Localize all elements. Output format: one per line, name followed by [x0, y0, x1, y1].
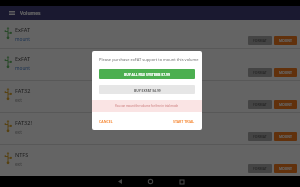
staticText: mount — [15, 65, 31, 72]
staticText: MOUNT — [279, 38, 292, 43]
staticText: mount — [15, 36, 31, 43]
staticText: FORMAT — [253, 134, 267, 139]
staticText: FORMAT — [253, 166, 267, 171]
button[interactable]: CANCEL — [99, 119, 113, 124]
staticText: BUY ALL FILE SYSTEMS $7.99 — [124, 72, 170, 76]
staticText: ext — [15, 97, 22, 104]
staticText: FAT32! — [15, 119, 32, 126]
staticText: ext — [15, 129, 22, 136]
button[interactable]: ExFAT — [0, 20, 300, 48]
button[interactable]: FAT32 — [0, 81, 300, 112]
staticText: START TRIAL — [173, 119, 195, 124]
button[interactable]: FORMAT — [248, 36, 272, 45]
button[interactable]: FORMAT — [248, 68, 272, 77]
button[interactable]: START TRIAL — [173, 119, 195, 124]
staticText: MOUNT — [279, 70, 292, 75]
staticText: FAT32 — [15, 87, 31, 94]
staticText: MOUNT — [279, 102, 292, 107]
button[interactable]: BUY ALL FILE SYSTEMS $7.99 — [99, 69, 195, 79]
button[interactable]: Back — [114, 176, 125, 187]
staticText: FORMAT — [253, 70, 267, 75]
button[interactable]: FAT32! — [0, 113, 300, 144]
staticText: Volumes — [20, 10, 41, 17]
button[interactable]: MOUNT — [274, 68, 297, 77]
staticText: NTFS — [15, 151, 29, 158]
staticText: FORMAT — [253, 38, 267, 43]
button[interactable]: Home — [145, 176, 156, 187]
button[interactable]: ExFAT — [0, 49, 300, 80]
button[interactable]: BUY EXFAT $4.99 — [99, 85, 195, 94]
staticText: ExFAT — [15, 55, 31, 62]
staticText: MOUNT — [279, 134, 292, 139]
button[interactable]: NTFS — [0, 145, 300, 176]
staticText: You can mount the volume for free in tri… — [115, 104, 179, 108]
staticText: BUY EXFAT $4.99 — [134, 88, 161, 92]
button[interactable]: MOUNT — [274, 132, 297, 141]
button[interactable]: MOUNT — [274, 36, 297, 45]
button[interactable]: FORMAT — [248, 164, 272, 173]
staticText: ext — [15, 161, 22, 168]
staticText: FORMAT — [253, 102, 267, 107]
staticText: MOUNT — [279, 166, 292, 171]
staticText: CANCEL — [99, 119, 113, 124]
button[interactable]: MOUNT — [274, 164, 297, 173]
button[interactable]: Open navigation drawer — [7, 8, 17, 18]
button[interactable]: MOUNT — [274, 100, 297, 109]
button[interactable]: FORMAT — [248, 132, 272, 141]
staticText: ExFAT — [15, 26, 31, 33]
staticText: Please purchase exFAT support to mount t… — [99, 57, 195, 62]
button[interactable]: FORMAT — [248, 100, 272, 109]
button[interactable]: Recent apps — [176, 176, 187, 187]
